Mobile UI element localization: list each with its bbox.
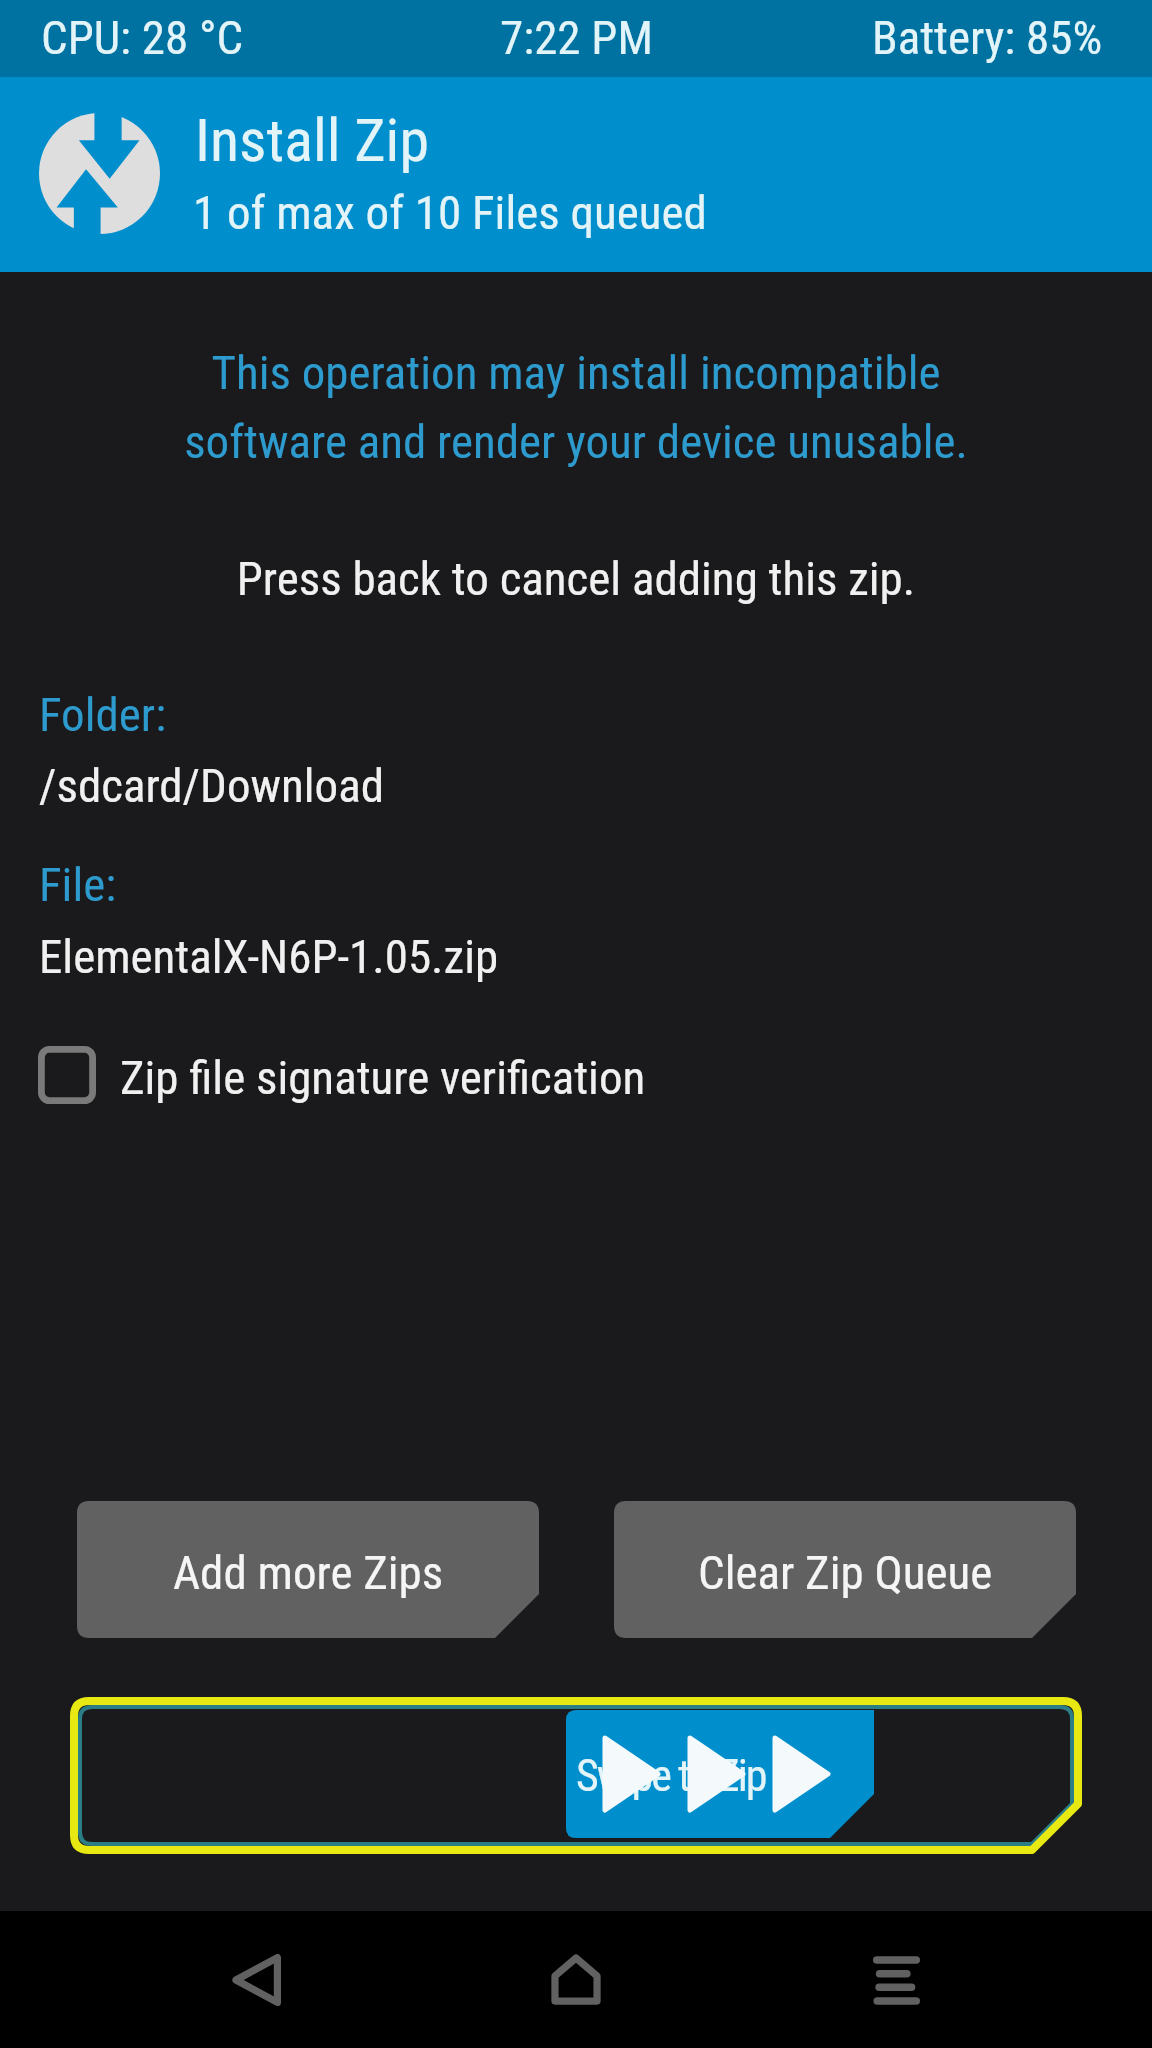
staticText: Folder:: [39, 687, 167, 742]
button[interactable]: Zip file signature verification: [38, 1044, 718, 1106]
staticText: This operation may install incompatible …: [0, 345, 1152, 470]
button[interactable]: Swipe to Zip: [70, 1697, 1082, 1854]
staticText: Swipe to Zip: [576, 1750, 766, 1802]
staticText: Install Zip: [195, 105, 429, 175]
staticText: CPU: 28 °C: [41, 10, 244, 65]
staticText: 1 of max of 10 Files queued: [193, 185, 707, 240]
staticText: Press back to cancel adding this zip.: [0, 551, 1152, 606]
button[interactable]: Clear Zip Queue: [614, 1501, 1076, 1638]
staticText: 7:22 PM: [500, 10, 653, 65]
button[interactable]: Menu: [836, 1911, 956, 2048]
button[interactable]: Back: [196, 1911, 316, 2048]
button[interactable]: Add more Zips: [77, 1501, 539, 1638]
staticText: Add more Zips: [173, 1545, 444, 1600]
staticText: ElementalX-N6P-1.05.zip: [39, 929, 499, 984]
staticText: Zip file signature verification: [120, 1050, 646, 1105]
staticText: Battery: 85%: [872, 10, 1103, 65]
staticText: File:: [39, 857, 117, 912]
staticText: Clear Zip Queue: [698, 1545, 993, 1600]
staticText: /sdcard/Download: [39, 758, 384, 813]
button[interactable]: Home: [516, 1911, 636, 2048]
